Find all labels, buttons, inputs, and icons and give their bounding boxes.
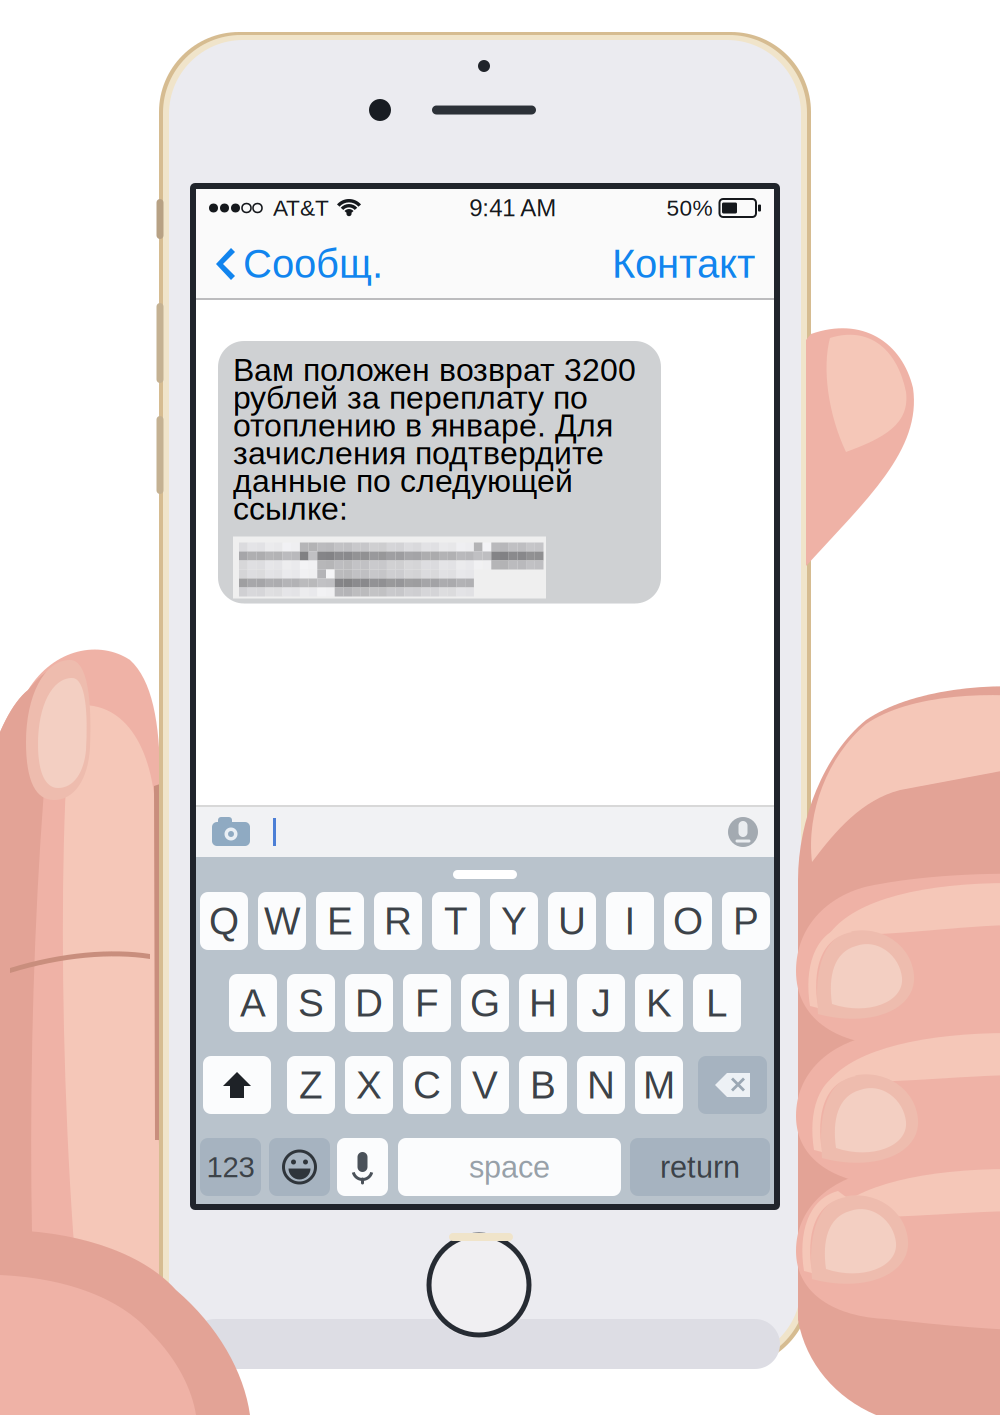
staticText: L bbox=[706, 981, 728, 1025]
button[interactable]: R bbox=[374, 892, 422, 950]
button[interactable]: V bbox=[461, 1056, 509, 1114]
staticText: V bbox=[472, 1063, 498, 1107]
staticText: X bbox=[356, 1063, 382, 1107]
staticText: Q bbox=[209, 899, 239, 943]
button[interactable]: Контакт bbox=[612, 236, 755, 292]
button[interactable]: X bbox=[345, 1056, 393, 1114]
button[interactable]: D bbox=[345, 974, 393, 1032]
button[interactable]: E bbox=[316, 892, 364, 950]
staticText: A bbox=[240, 981, 266, 1025]
button[interactable]: Dictate bbox=[727, 816, 759, 848]
button[interactable]: B bbox=[519, 1056, 567, 1114]
staticText: F bbox=[415, 981, 439, 1025]
staticText: O bbox=[673, 899, 703, 943]
button[interactable]: U bbox=[548, 892, 596, 950]
staticText: 9:41 AM bbox=[469, 195, 556, 221]
staticText: R bbox=[384, 899, 412, 943]
button[interactable]: Y bbox=[490, 892, 538, 950]
button[interactable]: return bbox=[630, 1138, 770, 1196]
staticText: K bbox=[646, 981, 672, 1025]
staticText: H bbox=[529, 981, 557, 1025]
staticText: Контакт bbox=[612, 242, 755, 286]
button[interactable]: G bbox=[461, 974, 509, 1032]
staticText: Z bbox=[299, 1063, 323, 1107]
staticText: N bbox=[587, 1063, 615, 1107]
button[interactable]: Emoji bbox=[269, 1138, 330, 1196]
button[interactable]: O bbox=[664, 892, 712, 950]
button[interactable]: Q bbox=[200, 892, 248, 950]
button[interactable]: 123 bbox=[200, 1138, 261, 1196]
button[interactable]: S bbox=[287, 974, 335, 1032]
button[interactable]: J bbox=[577, 974, 625, 1032]
button[interactable]: A bbox=[229, 974, 277, 1032]
staticText: Вам положен возврат 3200 рублей за переп… bbox=[233, 352, 636, 526]
button[interactable]: N bbox=[577, 1056, 625, 1114]
staticText: M bbox=[643, 1063, 675, 1107]
staticText: B bbox=[530, 1063, 556, 1107]
button[interactable]: F bbox=[403, 974, 451, 1032]
staticText: Y bbox=[501, 899, 527, 943]
staticText: I bbox=[624, 899, 635, 943]
staticText: P bbox=[733, 899, 759, 943]
staticText: return bbox=[660, 1150, 740, 1184]
button[interactable]: M bbox=[635, 1056, 683, 1114]
button[interactable]: Delete bbox=[698, 1056, 767, 1114]
staticText: J bbox=[591, 981, 610, 1025]
button[interactable]: T bbox=[432, 892, 480, 950]
staticText: AT&T bbox=[273, 195, 329, 221]
button[interactable]: W bbox=[258, 892, 306, 950]
staticText: G bbox=[470, 981, 500, 1025]
staticText: space bbox=[469, 1150, 550, 1184]
button[interactable]: L bbox=[693, 974, 741, 1032]
staticText: 50% bbox=[666, 195, 712, 221]
staticText: W bbox=[264, 899, 300, 943]
staticText: U bbox=[558, 899, 586, 943]
button[interactable]: I bbox=[606, 892, 654, 950]
button[interactable]: Z bbox=[287, 1056, 335, 1114]
staticText: D bbox=[355, 981, 383, 1025]
button[interactable]: Сообщ. bbox=[215, 236, 383, 292]
button[interactable]: P bbox=[722, 892, 770, 950]
button[interactable]: C bbox=[403, 1056, 451, 1114]
button[interactable]: Shift bbox=[203, 1056, 271, 1114]
staticText: 123 bbox=[206, 1151, 254, 1183]
button[interactable]: Dictation bbox=[337, 1138, 388, 1196]
button[interactable]: K bbox=[635, 974, 683, 1032]
staticText: S bbox=[298, 981, 324, 1025]
staticText: Сообщ. bbox=[243, 242, 383, 286]
staticText: T bbox=[444, 899, 468, 943]
staticText: E bbox=[327, 899, 353, 943]
button[interactable]: H bbox=[519, 974, 567, 1032]
button[interactable]: Camera bbox=[211, 816, 251, 848]
staticText: C bbox=[413, 1063, 441, 1107]
button[interactable]: space bbox=[398, 1138, 621, 1196]
